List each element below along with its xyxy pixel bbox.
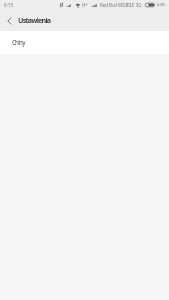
button[interactable]: Back [0, 12, 18, 30]
staticText: Chiny [12, 38, 25, 46]
staticText: H+ [82, 2, 88, 8]
staticText: 6:15 [4, 2, 14, 8]
staticText: Ustawienia [18, 15, 51, 25]
button[interactable]: Chiny [0, 31, 169, 54]
staticText: Red Bull MOBILE 3G [100, 2, 142, 8]
staticText: 64% [157, 2, 166, 8]
